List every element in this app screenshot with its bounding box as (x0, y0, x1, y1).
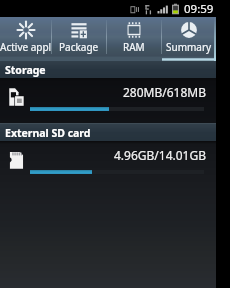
button[interactable]: Package (52, 17, 106, 58)
staticText: Active appli (0, 40, 51, 54)
button[interactable]: 4.96GB/14.01GB (0, 141, 216, 185)
button[interactable]: Active appli (0, 17, 51, 58)
button[interactable]: 280MB/618MB (0, 78, 216, 123)
staticText: 280MB/618MB (0, 84, 206, 100)
staticText: 09:59 (184, 1, 214, 17)
staticText: Storage (5, 63, 46, 77)
button[interactable]: Summary (162, 17, 216, 58)
staticText: RAM (123, 40, 145, 54)
staticText: Package (59, 40, 99, 54)
staticText: Summary (166, 40, 212, 54)
staticText: 4.96GB/14.01GB (0, 147, 206, 163)
button[interactable]: RAM (107, 17, 161, 58)
staticText: External SD card (5, 126, 91, 140)
